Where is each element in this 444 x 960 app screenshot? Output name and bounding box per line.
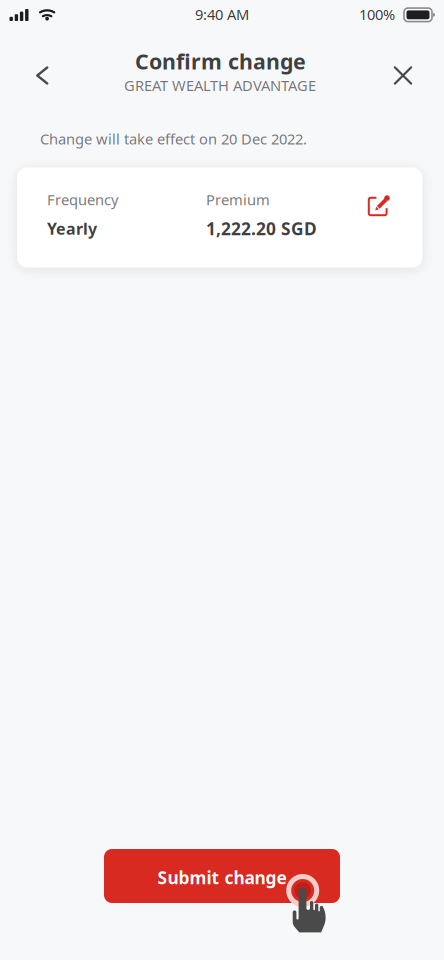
staticText: Confirm change — [135, 47, 306, 75]
button[interactable]: Back — [20, 53, 64, 97]
staticText: Premium — [206, 190, 270, 209]
staticText: Frequency — [47, 190, 118, 209]
staticText: 1,222.20 SGD — [206, 217, 317, 240]
button[interactable]: Submit change — [104, 849, 340, 903]
staticText: 9:40 AM — [195, 4, 249, 24]
button[interactable]: Edit — [361, 189, 395, 223]
staticText: 100% — [359, 4, 395, 24]
staticText: Change will take effect on 20 Dec 2022. — [40, 129, 307, 148]
staticText: GREAT WEALTH ADVANTAGE — [124, 75, 316, 95]
staticText: Yearly — [47, 218, 97, 239]
button[interactable]: Close — [381, 53, 425, 97]
staticText: Submit change — [157, 866, 286, 889]
